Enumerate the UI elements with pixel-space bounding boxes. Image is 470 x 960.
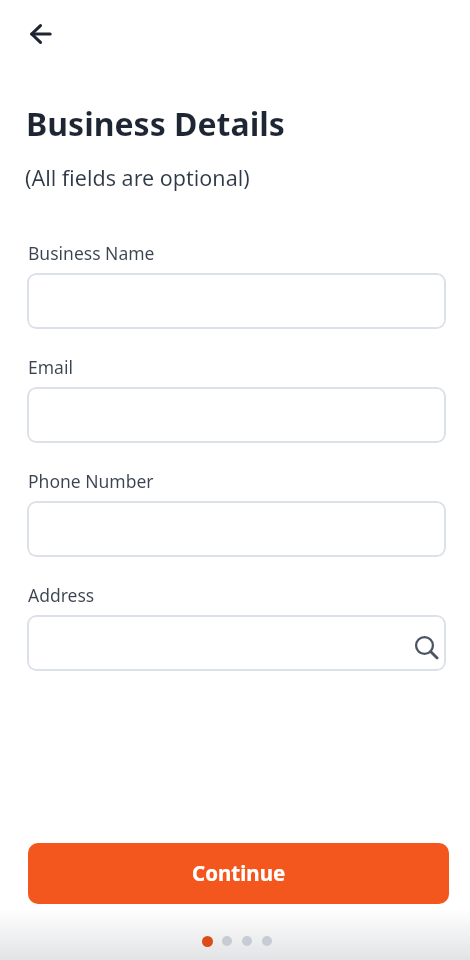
button[interactable] (27, 501, 446, 557)
staticText: Phone Number (28, 469, 154, 493)
staticText: Email (28, 355, 73, 379)
button[interactable] (27, 387, 446, 443)
button[interactable] (20, 14, 60, 54)
staticText: Business Name (28, 241, 155, 265)
staticText: Address (28, 583, 95, 607)
button[interactable]: Continue (28, 843, 449, 904)
staticText: Continue (192, 859, 286, 887)
button[interactable] (27, 273, 446, 329)
button[interactable] (27, 615, 446, 671)
staticText: (All fields are optional) (25, 163, 250, 192)
staticText: Business Details (26, 102, 285, 146)
